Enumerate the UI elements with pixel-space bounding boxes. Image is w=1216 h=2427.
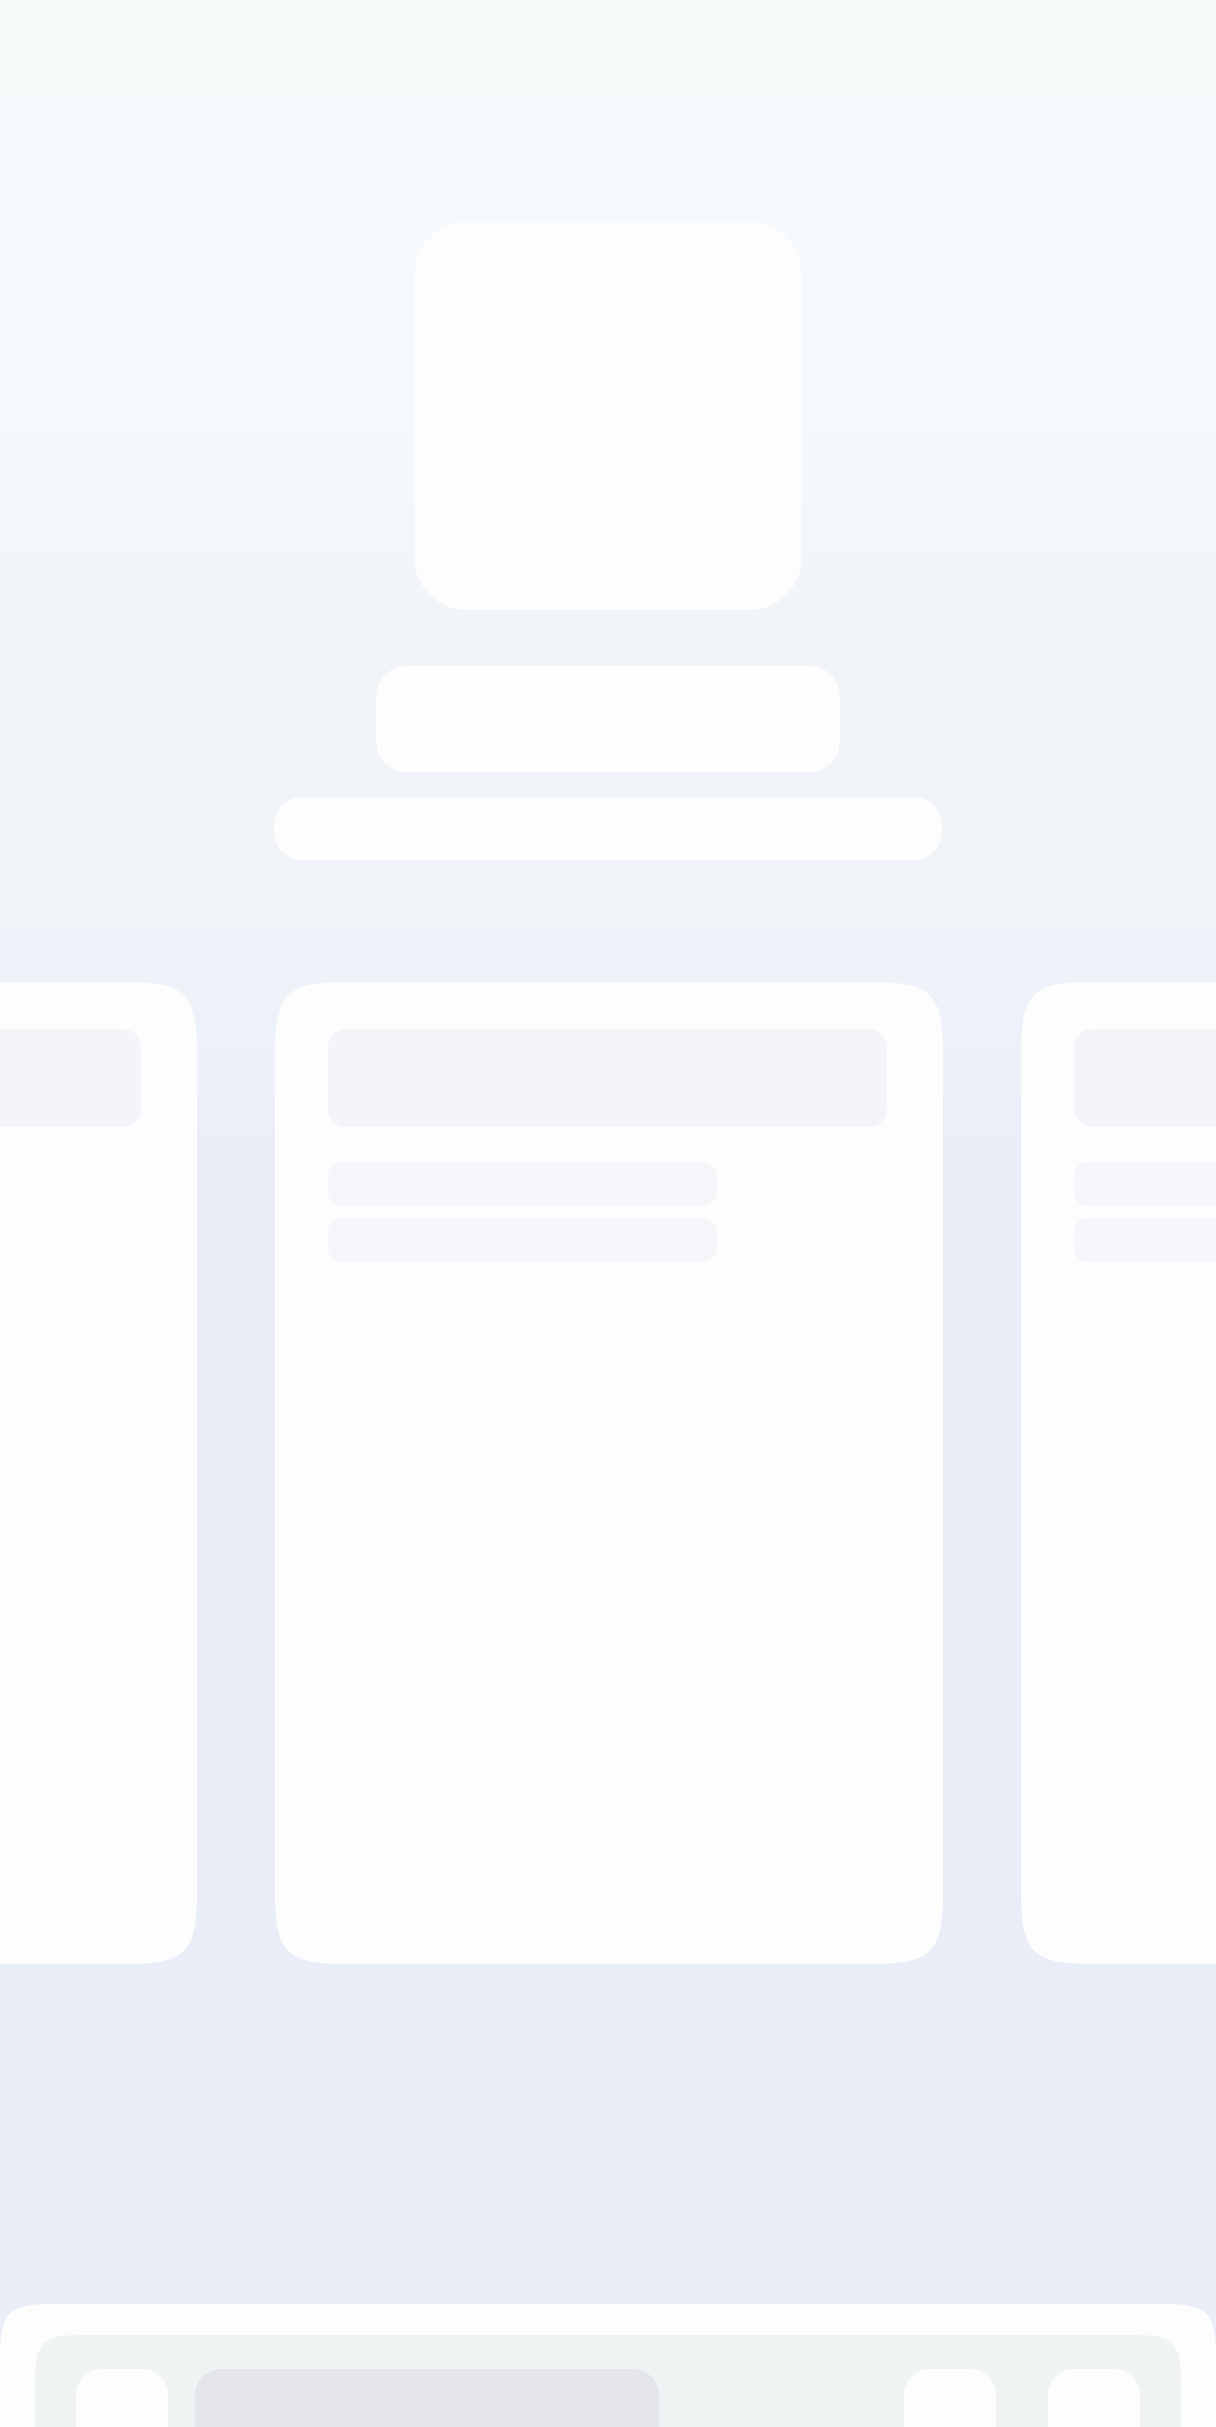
button[interactable]: Loading item <box>1021 982 1216 1964</box>
button[interactable]: Loading item <box>275 982 943 1964</box>
